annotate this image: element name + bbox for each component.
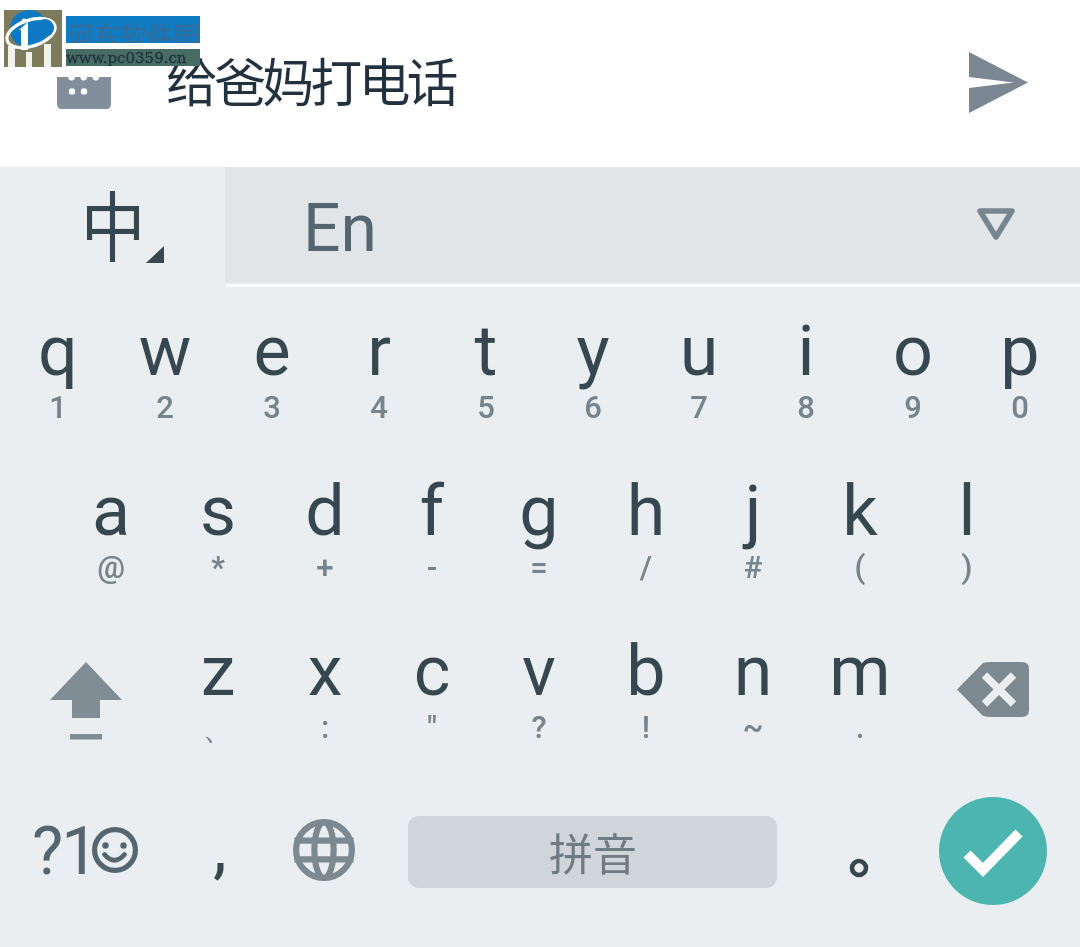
staticText: /: [591, 549, 701, 585]
staticText: n: [698, 630, 808, 712]
staticText: t: [431, 310, 541, 392]
button[interactable]: Emoji: [57, 77, 111, 109]
button[interactable]: x: [270, 630, 380, 740]
button[interactable]: Send: [958, 42, 1038, 122]
staticText: w: [110, 310, 220, 392]
staticText: *: [163, 549, 273, 585]
button[interactable]: 拼音: [408, 816, 777, 888]
staticText: ): [912, 549, 1022, 585]
staticText: q: [3, 310, 113, 392]
staticText: u: [644, 310, 754, 392]
staticText: 9: [858, 389, 968, 425]
button[interactable]: k: [805, 470, 915, 580]
staticText: p: [965, 310, 1075, 392]
button[interactable]: f: [377, 470, 487, 580]
staticText: ,: [170, 806, 270, 888]
staticText: l: [912, 470, 1022, 552]
staticText: 7: [644, 389, 754, 425]
staticText: :: [270, 709, 380, 745]
button[interactable]: m: [805, 630, 915, 740]
staticText: 、: [163, 709, 273, 748]
button[interactable]: e: [217, 310, 327, 420]
staticText: y: [538, 310, 648, 392]
staticText: a: [56, 470, 166, 552]
staticText: g: [484, 470, 594, 552]
staticText: 3: [217, 389, 327, 425]
staticText: ?: [484, 709, 594, 745]
button[interactable]: Confirm: [919, 777, 1067, 925]
staticText: #: [698, 549, 808, 585]
button[interactable]: Switch language: [264, 790, 384, 910]
button[interactable]: p: [965, 310, 1075, 420]
button[interactable]: q: [3, 310, 113, 420]
staticText: 河东软件园: [67, 16, 200, 43]
staticText: -: [377, 549, 487, 585]
button[interactable]: s: [163, 470, 273, 580]
staticText: !: [591, 709, 701, 745]
button[interactable]: h: [591, 470, 701, 580]
button[interactable]: En: [225, 167, 1080, 283]
staticText: 4: [324, 389, 434, 425]
staticText: www.pc0359.cn: [66, 49, 187, 66]
button[interactable]: a: [56, 470, 166, 580]
staticText: ?1: [32, 813, 97, 890]
button[interactable]: y: [538, 310, 648, 420]
staticText: h: [591, 470, 701, 552]
button[interactable]: r: [324, 310, 434, 420]
button[interactable]: Period: [809, 808, 909, 928]
button[interactable]: z: [163, 630, 273, 740]
staticText: +: [270, 549, 380, 585]
staticText: i: [751, 310, 861, 392]
staticText: s: [163, 470, 273, 552]
staticText: b: [591, 630, 701, 712]
staticText: m: [805, 630, 915, 712]
button[interactable]: ,: [169, 790, 269, 910]
staticText: x: [270, 630, 380, 712]
button[interactable]: Symbols and emoji: [14, 790, 164, 910]
button[interactable]: t: [431, 310, 541, 420]
staticText: 6: [538, 389, 648, 425]
staticText: 5: [431, 389, 541, 425]
staticText: ": [377, 709, 487, 745]
staticText: z: [163, 630, 273, 712]
staticText: k: [805, 470, 915, 552]
staticText: .: [805, 709, 915, 745]
button[interactable]: d: [270, 470, 380, 580]
staticText: f: [377, 470, 487, 552]
staticText: @: [56, 549, 166, 585]
staticText: 0: [965, 389, 1075, 425]
button[interactable]: n: [698, 630, 808, 740]
button[interactable]: v: [484, 630, 594, 740]
staticText: j: [698, 470, 808, 552]
button[interactable]: Backspace: [915, 608, 1075, 768]
button[interactable]: w: [110, 310, 220, 420]
button[interactable]: u: [644, 310, 754, 420]
button[interactable]: b: [591, 630, 701, 740]
button[interactable]: c: [377, 630, 487, 740]
staticText: 2: [110, 389, 220, 425]
staticText: 8: [751, 389, 861, 425]
button[interactable]: o: [858, 310, 968, 420]
staticText: En: [303, 190, 377, 267]
staticText: v: [484, 630, 594, 712]
button[interactable]: j: [698, 470, 808, 580]
staticText: 给爸妈打电话: [166, 42, 455, 117]
staticText: o: [858, 310, 968, 392]
staticText: d: [270, 470, 380, 552]
staticText: r: [324, 310, 434, 392]
button[interactable]: l: [912, 470, 1022, 580]
staticText: 拼音: [549, 820, 637, 884]
button[interactable]: Shift: [5, 608, 165, 768]
staticText: 1: [3, 389, 113, 425]
staticText: ~: [698, 709, 808, 745]
button[interactable]: g: [484, 470, 594, 580]
staticText: =: [484, 549, 594, 585]
staticText: (: [805, 549, 915, 585]
button[interactable]: i: [751, 310, 861, 420]
staticText: c: [377, 630, 487, 712]
button[interactable]: Chinese input: [0, 167, 225, 283]
staticText: e: [217, 310, 327, 392]
